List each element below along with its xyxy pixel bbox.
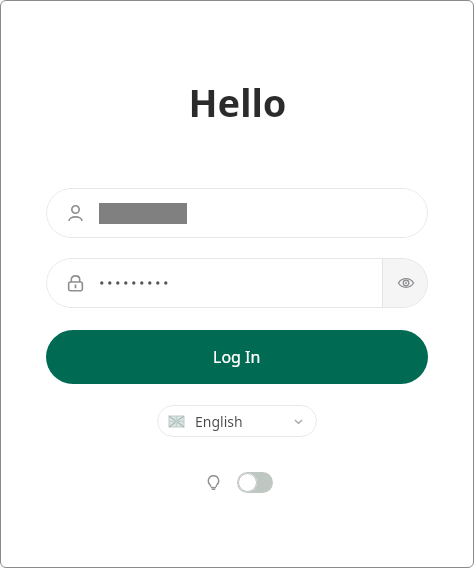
button[interactable]: Theme bbox=[201, 470, 225, 494]
staticText: English bbox=[195, 412, 243, 431]
button[interactable]: Toggle dark mode bbox=[237, 472, 273, 493]
staticText: Hello bbox=[188, 76, 287, 128]
staticText: Log In bbox=[213, 346, 261, 368]
button[interactable] bbox=[66, 258, 378, 308]
button[interactable]: Log In bbox=[46, 330, 428, 384]
button[interactable]: English bbox=[157, 405, 317, 437]
button[interactable] bbox=[46, 188, 428, 238]
button[interactable]: Show password bbox=[383, 258, 428, 308]
